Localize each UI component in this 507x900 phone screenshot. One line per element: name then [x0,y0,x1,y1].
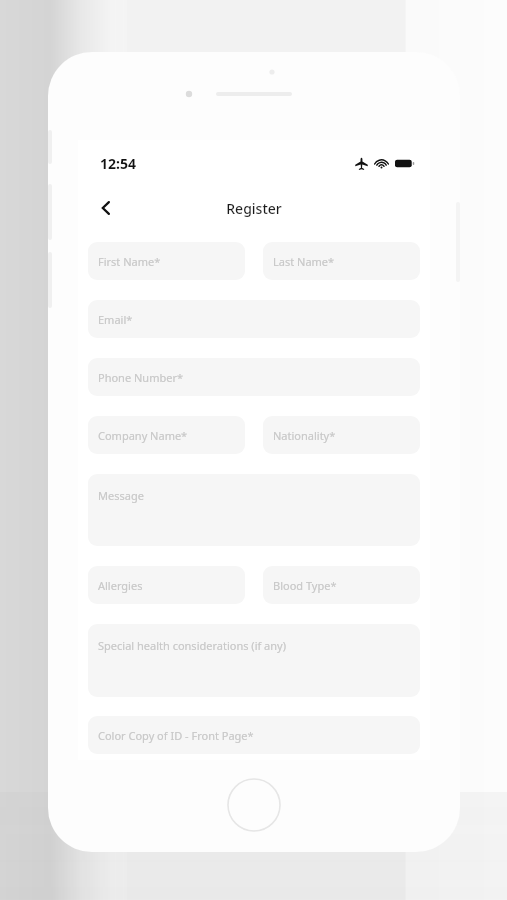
staticText: Last Name* [273,254,335,269]
staticText: Color Copy of ID - Front Page* [98,728,254,743]
staticText: Company Name* [98,428,188,443]
button[interactable]: Email* [88,300,420,338]
button[interactable]: Message [88,474,420,546]
button[interactable]: Color Copy of ID - Front Page* [88,716,420,754]
button[interactable]: Back [88,190,124,226]
staticText: 12:54 [100,154,136,173]
staticText: First Name* [98,254,161,269]
button[interactable]: Blood Type* [263,566,420,604]
button[interactable]: Allergies [88,566,245,604]
button[interactable]: Company Name* [88,416,245,454]
button[interactable]: Phone Number* [88,358,420,396]
button[interactable]: Nationality* [263,416,420,454]
button[interactable]: Home [227,778,281,832]
staticText: Email* [98,312,133,327]
staticText: Message [98,488,144,503]
staticText: Register [226,199,282,218]
button[interactable]: First Name* [88,242,245,280]
staticText: Nationality* [273,428,336,443]
staticText: Special health considerations (if any) [98,638,286,653]
staticText: Allergies [98,578,143,593]
staticText: Blood Type* [273,578,337,593]
button[interactable]: Special health considerations (if any) [88,624,420,697]
staticText: Phone Number* [98,370,183,385]
button[interactable]: Last Name* [263,242,420,280]
